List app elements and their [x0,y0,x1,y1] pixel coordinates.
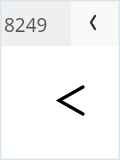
button[interactable]: 8249 [0,0,71,46]
button[interactable]: Back [71,0,120,46]
button[interactable]: Previous [59,87,83,114]
staticText: 8249 [4,12,48,38]
